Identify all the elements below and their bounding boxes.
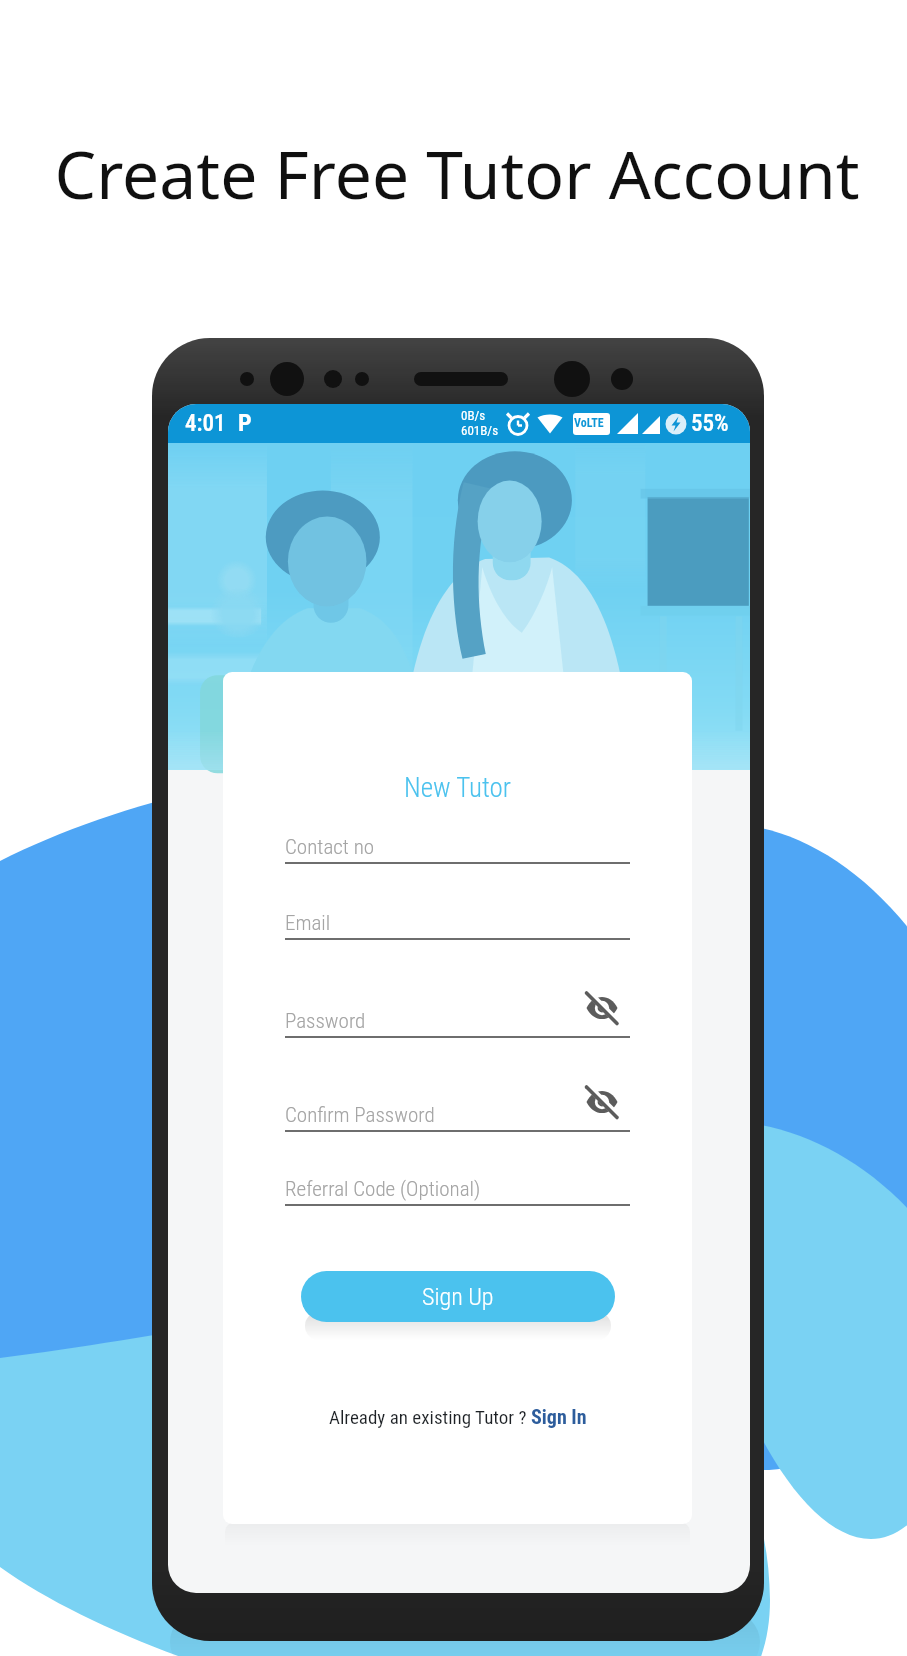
staticText: New Tutor <box>404 772 512 804</box>
staticText: 601B/s <box>461 423 499 438</box>
staticText: VoLTE <box>574 416 604 430</box>
button[interactable]: Contact no <box>285 816 630 864</box>
button[interactable]: Sign Up <box>301 1271 615 1322</box>
staticText: Referral Code (Optional) <box>285 1177 481 1202</box>
button[interactable]: Confirm Password <box>285 1084 630 1132</box>
staticText: 4:01 <box>185 410 226 437</box>
staticText: 0B/s <box>461 408 486 423</box>
staticText: Create Free Tutor Account <box>54 128 860 218</box>
staticText: Password <box>285 1009 366 1034</box>
button[interactable]: Show password <box>583 1083 621 1121</box>
button[interactable]: Password <box>285 990 630 1038</box>
staticText: 55% <box>691 410 729 437</box>
button[interactable]: Sign In <box>531 1405 587 1428</box>
staticText: Sign In <box>531 1405 587 1428</box>
button[interactable]: Referral Code (Optional) <box>285 1158 630 1206</box>
staticText: Already an existing Tutor ? <box>329 1406 531 1428</box>
button[interactable]: Show password <box>583 989 621 1027</box>
button[interactable]: Email <box>285 892 630 940</box>
staticText: P <box>238 409 252 437</box>
staticText: Sign Up <box>422 1283 494 1311</box>
staticText: Email <box>285 911 331 936</box>
staticText: Confirm Password <box>285 1103 435 1128</box>
staticText: Contact no <box>285 835 375 860</box>
